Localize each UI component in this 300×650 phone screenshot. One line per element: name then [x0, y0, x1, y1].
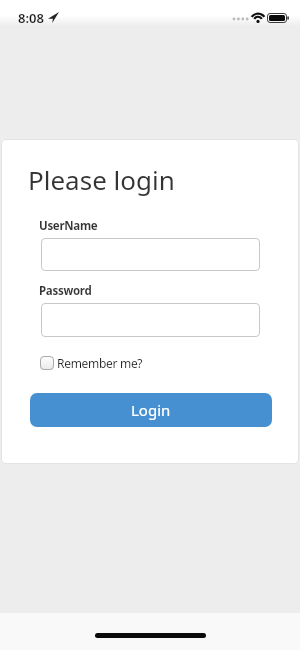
staticText: 8:08: [18, 9, 44, 27]
button[interactable]: Remember me?: [40, 355, 143, 371]
staticText: Remember me?: [57, 355, 143, 371]
staticText: Please login: [28, 162, 175, 197]
button[interactable]: [41, 238, 260, 271]
staticText: UserName: [39, 218, 98, 234]
staticText: Password: [39, 283, 92, 299]
button[interactable]: Login: [30, 393, 272, 427]
staticText: Login: [131, 400, 171, 420]
button[interactable]: [41, 303, 260, 337]
